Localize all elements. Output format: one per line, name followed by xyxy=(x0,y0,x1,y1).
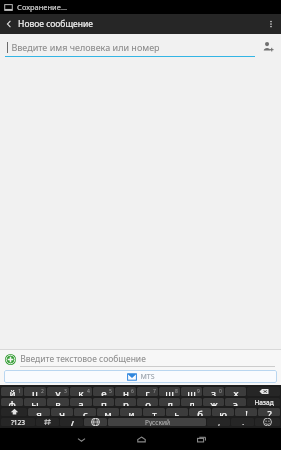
staticText: 3 xyxy=(64,388,67,395)
staticText: р xyxy=(123,398,129,406)
button[interactable]: т xyxy=(143,408,165,416)
staticText: Введите текстовое сообщение xyxy=(20,353,146,365)
button[interactable]: а xyxy=(70,398,92,406)
staticText: к xyxy=(78,387,84,396)
staticText: . xyxy=(242,418,244,426)
button[interactable]: с xyxy=(74,408,96,416)
button[interactable]: ? xyxy=(258,408,280,416)
staticText: 6 xyxy=(131,388,134,395)
staticText: 4 xyxy=(87,388,90,395)
staticText: 9 xyxy=(197,388,200,395)
staticText: т xyxy=(152,408,157,416)
button[interactable]: ?123 xyxy=(1,418,35,426)
staticText: г xyxy=(145,387,150,396)
button[interactable]: Recent apps xyxy=(181,428,221,450)
button[interactable]: Back xyxy=(61,428,101,450)
staticText: э xyxy=(233,398,238,406)
button[interactable]: э xyxy=(225,398,246,406)
button[interactable]: в xyxy=(47,398,69,406)
staticText: а xyxy=(78,398,84,406)
staticText: ы xyxy=(31,398,39,406)
button[interactable]: Русский xyxy=(108,418,206,426)
staticText: щ xyxy=(187,387,196,396)
button[interactable]: More options xyxy=(261,14,281,34)
button[interactable]: х xyxy=(225,387,246,396)
button[interactable]: г xyxy=(137,387,158,396)
staticText: х xyxy=(233,387,239,396)
button[interactable]: ш xyxy=(159,387,180,396)
button[interactable]: ц xyxy=(24,387,46,396)
staticText: н xyxy=(123,387,129,396)
button[interactable]: ! xyxy=(235,408,257,416)
button[interactable]: з xyxy=(203,387,224,396)
button[interactable]: ж xyxy=(203,398,224,406)
button[interactable]: ч xyxy=(51,408,73,416)
staticText: ц xyxy=(32,387,38,396)
staticText: п xyxy=(101,398,107,406)
button[interactable]: MTS xyxy=(4,370,277,383)
button[interactable]: д xyxy=(181,398,202,406)
button[interactable]: я xyxy=(28,408,50,416)
staticText: ю xyxy=(219,408,227,416)
staticText: Введите имя человека или номер xyxy=(11,41,160,53)
staticText: я xyxy=(36,408,42,416)
staticText: б xyxy=(197,408,203,416)
button[interactable]: Назад xyxy=(247,398,280,406)
button[interactable]: р xyxy=(115,398,136,406)
staticText: д xyxy=(189,398,195,406)
staticText: ч xyxy=(59,408,65,416)
staticText: е xyxy=(101,387,107,396)
button[interactable]: Backspace xyxy=(247,387,280,396)
button[interactable]: о xyxy=(137,398,158,406)
button[interactable]: . xyxy=(231,418,254,426)
button[interactable]: ь xyxy=(166,408,188,416)
staticText: , xyxy=(218,418,220,426)
staticText: ?123 xyxy=(11,418,25,426)
button[interactable]: / xyxy=(60,418,83,426)
button[interactable]: й xyxy=(1,387,23,396)
button[interactable]: Back xyxy=(0,14,18,34)
staticText: у xyxy=(55,387,61,396)
button[interactable]: к xyxy=(70,387,92,396)
button[interactable]: Change language xyxy=(84,418,107,426)
button[interactable]: Home xyxy=(121,428,161,450)
button[interactable]: Shift xyxy=(1,408,27,416)
button[interactable]: Add contact xyxy=(255,34,281,60)
staticText: 5 xyxy=(109,388,112,395)
button[interactable]: и xyxy=(120,408,142,416)
staticText: й xyxy=(9,387,16,396)
staticText: Русский xyxy=(145,418,170,426)
button[interactable]: ы xyxy=(24,398,46,406)
button[interactable]: Add attachment xyxy=(0,350,20,368)
button[interactable]: Settings xyxy=(36,418,59,426)
button[interactable]: п xyxy=(93,398,114,406)
staticText: в xyxy=(55,398,61,406)
button[interactable]: щ xyxy=(181,387,202,396)
staticText: MTS xyxy=(140,372,155,382)
button[interactable]: у xyxy=(47,387,69,396)
staticText: 1 xyxy=(18,388,21,395)
staticText: Новое сообщение xyxy=(18,18,93,30)
staticText: с xyxy=(83,408,88,416)
staticText: / xyxy=(70,418,74,426)
button[interactable]: Emoji xyxy=(255,418,280,426)
staticText: з xyxy=(211,387,216,396)
button[interactable]: м xyxy=(97,408,119,416)
staticText: м xyxy=(104,408,112,416)
button[interactable]: , xyxy=(207,418,230,426)
staticText: 8 xyxy=(175,388,178,395)
staticText: Сохранение... xyxy=(17,2,67,12)
button[interactable]: л xyxy=(159,398,180,406)
staticText: 7 xyxy=(153,388,156,395)
button[interactable]: е xyxy=(93,387,114,396)
button[interactable]: ю xyxy=(212,408,234,416)
staticText: ф xyxy=(8,398,16,406)
staticText: о xyxy=(145,398,151,406)
staticText: ь xyxy=(174,408,180,416)
button[interactable]: н xyxy=(115,387,136,396)
staticText: ж xyxy=(210,398,218,406)
staticText: и xyxy=(128,408,135,416)
staticText: ! xyxy=(245,408,248,416)
button[interactable]: б xyxy=(189,408,211,416)
button[interactable]: ф xyxy=(1,398,23,406)
